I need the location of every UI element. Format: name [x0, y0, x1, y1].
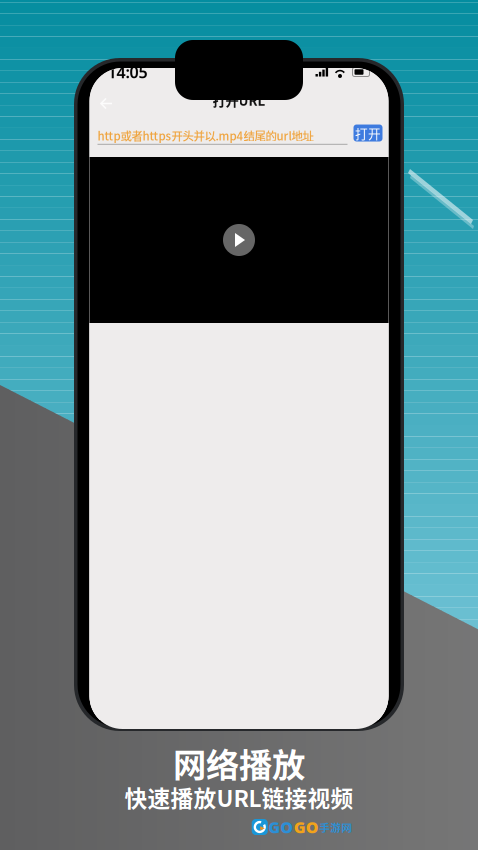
staticText: http或者https开头并以.mp4结尾的url地址: [97, 127, 313, 144]
staticText: 打开URL: [212, 90, 265, 110]
staticText: GO: [268, 816, 293, 838]
staticText: 打开: [355, 124, 381, 142]
button[interactable]: Back: [89, 89, 123, 119]
staticText: GO: [294, 816, 319, 838]
staticText: 网络播放: [173, 739, 305, 787]
staticText: 手游网: [319, 819, 352, 835]
button[interactable]: 打开: [353, 124, 382, 141]
staticText: 快速播放URL链接视频: [124, 781, 353, 813]
staticText: 14:05: [107, 61, 147, 83]
